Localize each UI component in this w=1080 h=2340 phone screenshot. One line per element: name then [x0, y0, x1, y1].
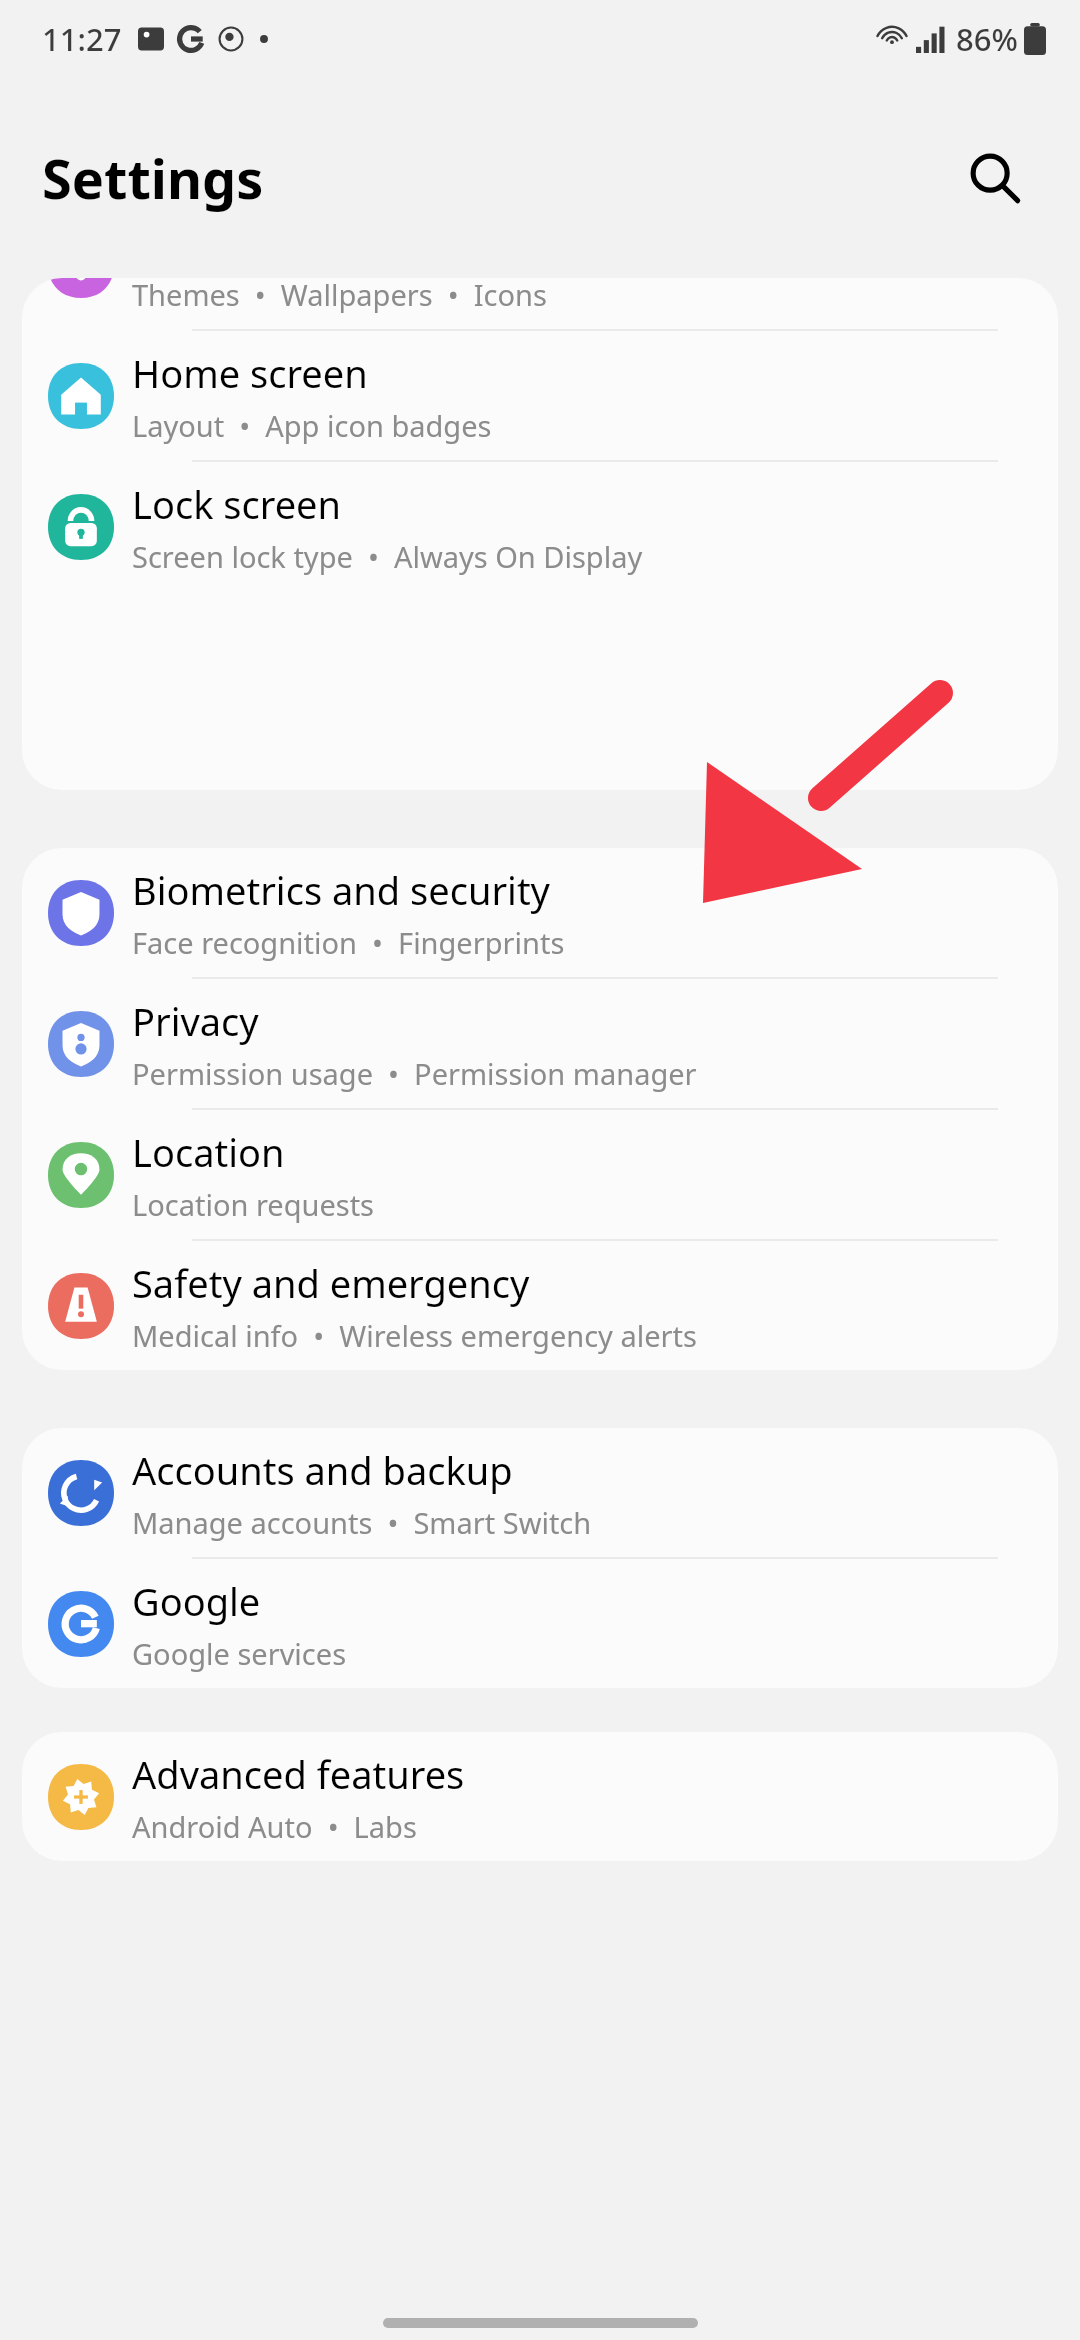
button[interactable]: Accounts and backup: [22, 1428, 1058, 1559]
staticText: Home screen: [132, 347, 368, 399]
staticText: Android Auto • Labs: [132, 1807, 417, 1846]
button[interactable]: Google: [22, 1559, 1058, 1688]
staticText: Lock screen: [132, 478, 342, 530]
staticText: Biometrics and security: [132, 864, 551, 916]
staticText: Google: [132, 1575, 261, 1627]
button[interactable]: Location: [22, 1110, 1058, 1241]
staticText: Privacy: [132, 995, 259, 1047]
button[interactable]: Home screen: [22, 331, 1058, 462]
staticText: Manage accounts • Smart Switch: [132, 1503, 592, 1542]
staticText: Permission usage • Permission manager: [132, 1054, 697, 1093]
button[interactable]: Safety and emergency: [22, 1241, 1058, 1370]
staticText: 11:27: [42, 18, 122, 60]
staticText: Advanced features: [132, 1748, 465, 1800]
staticText: Themes • Wallpapers • Icons: [132, 278, 547, 314]
staticText: Face recognition • Fingerprints: [132, 923, 565, 962]
staticText: Settings: [42, 141, 264, 215]
staticText: Screen lock type • Always On Display: [132, 537, 643, 576]
button[interactable]: Advanced features: [22, 1732, 1058, 1861]
button[interactable]: Search: [940, 123, 1050, 233]
button[interactable]: Themes: [22, 278, 1058, 331]
staticText: Safety and emergency: [132, 1257, 530, 1309]
button[interactable]: Privacy: [22, 979, 1058, 1110]
staticText: Medical info • Wireless emergency alerts: [132, 1316, 697, 1355]
staticText: Accounts and backup: [132, 1444, 513, 1496]
staticText: Google services: [132, 1634, 347, 1673]
button[interactable]: Biometrics and security: [22, 848, 1058, 979]
staticText: Location requests: [132, 1185, 375, 1224]
staticText: 86%: [956, 18, 1018, 60]
staticText: Location: [132, 1126, 285, 1178]
staticText: Layout • App icon badges: [132, 406, 492, 445]
button[interactable]: Lock screen: [22, 462, 1058, 591]
